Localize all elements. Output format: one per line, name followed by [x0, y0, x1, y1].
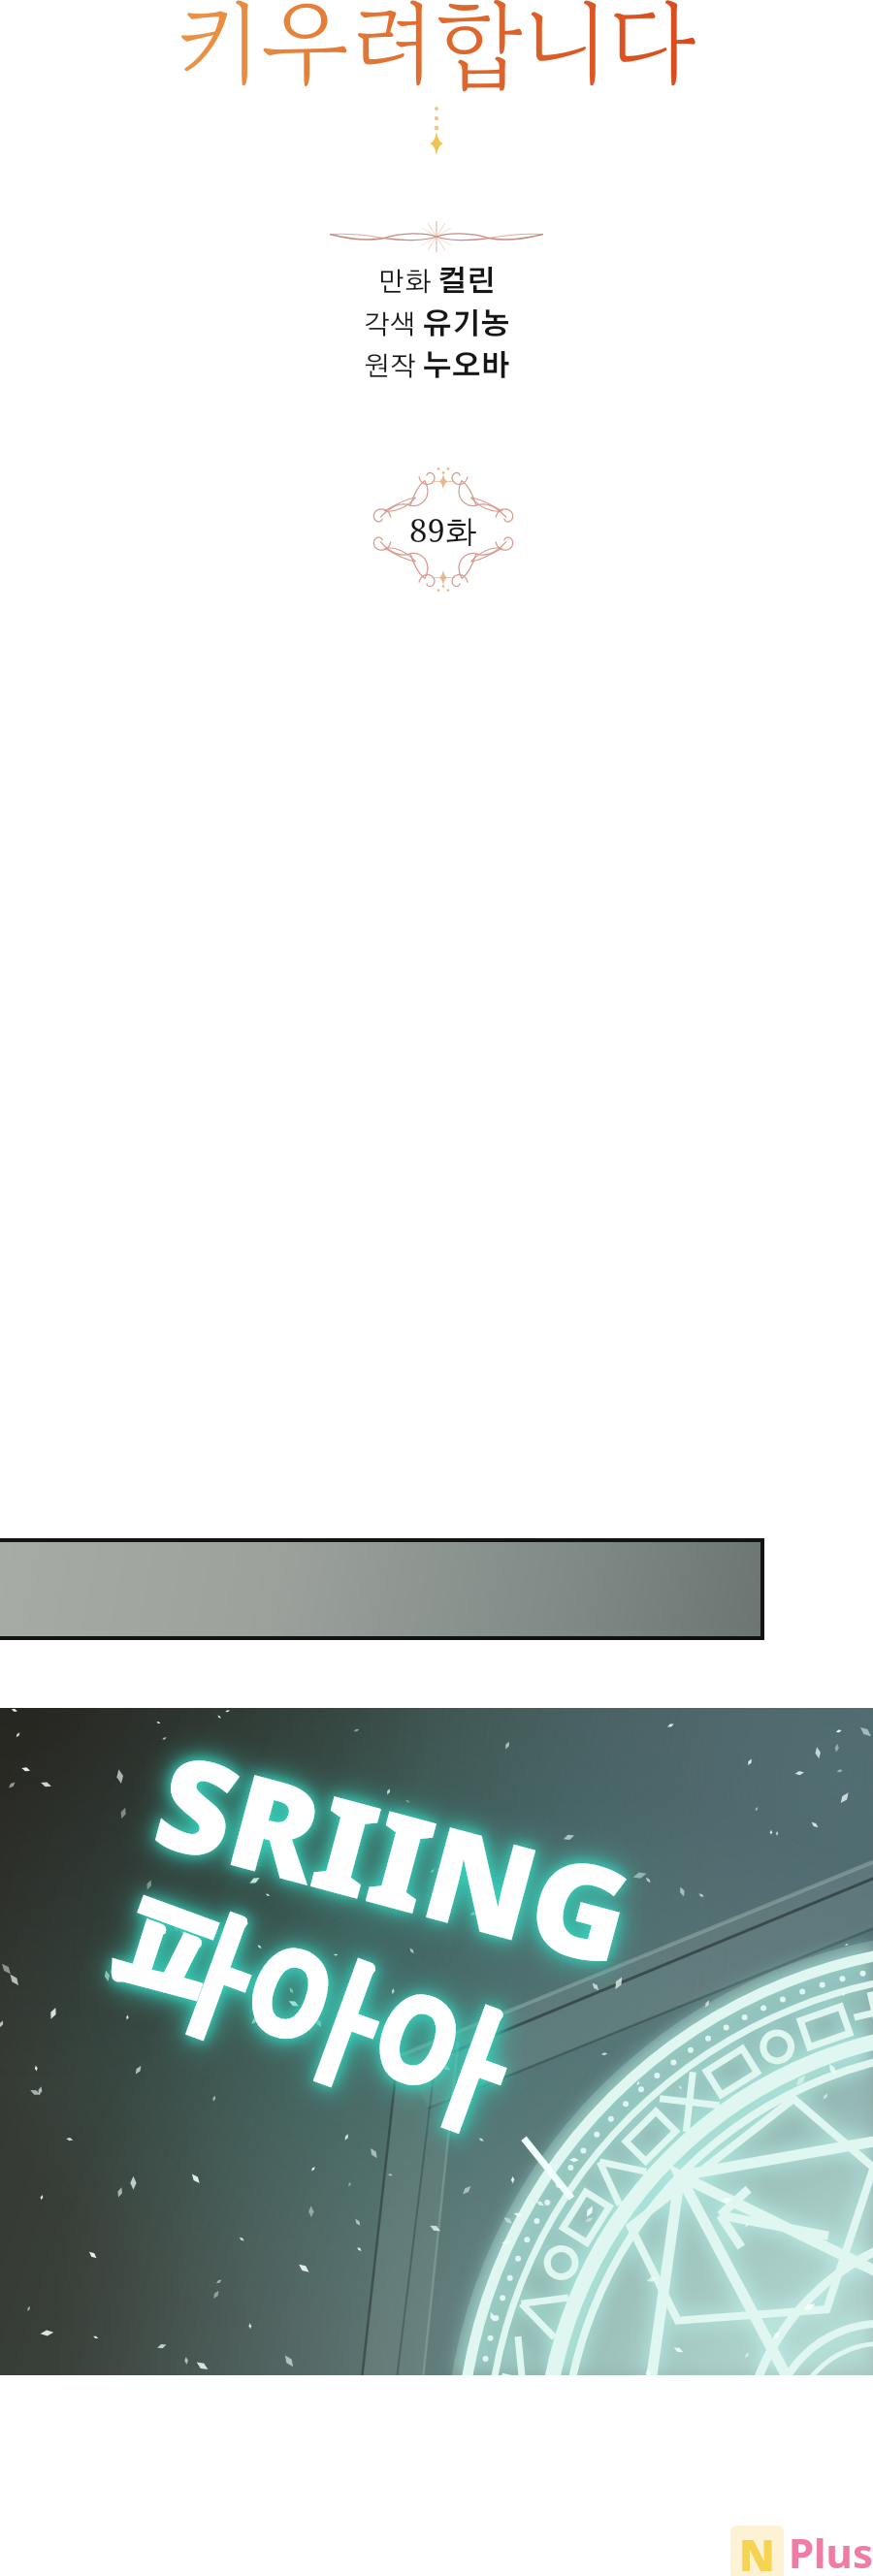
staticText: SRIING [139, 1709, 650, 2005]
button[interactable]: Comic panel [0, 1538, 764, 1640]
staticText: 파아아 [88, 1859, 529, 2158]
button[interactable]: Episode 89 [372, 469, 515, 590]
staticText: 누오바 [423, 352, 510, 381]
staticText: 컬린 [437, 268, 496, 297]
button[interactable]: Comic panel artwork [0, 1708, 873, 2375]
staticText: N [739, 2526, 775, 2576]
staticText: 파아아 [88, 1859, 529, 2158]
staticText: 원작 [364, 354, 423, 381]
staticText: 유기농 [423, 310, 510, 339]
staticText: 89화 [409, 508, 477, 552]
staticText: 각색 [364, 312, 423, 339]
staticText: 키우려합니다 [0, 0, 873, 112]
button[interactable]: NPlus [730, 2525, 873, 2576]
staticText: Plus [789, 2525, 873, 2576]
staticText: 파아아 [88, 1859, 529, 2158]
staticText: SRIING [139, 1709, 650, 2005]
staticText: SRIING [139, 1709, 650, 2005]
staticText: 만화 [378, 270, 437, 297]
